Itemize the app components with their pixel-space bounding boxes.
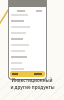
button[interactable] [9,49,46,55]
button[interactable] [9,43,46,49]
button[interactable] [10,71,45,77]
staticText: Инвестиционный [11,77,53,83]
button[interactable] [9,31,46,37]
button[interactable] [9,13,46,19]
button[interactable] [9,55,46,61]
staticText: и другие продукты [10,84,55,90]
button[interactable] [9,67,46,73]
button[interactable] [9,37,46,43]
button[interactable] [9,19,46,25]
button[interactable] [9,25,46,31]
button[interactable] [9,61,46,67]
